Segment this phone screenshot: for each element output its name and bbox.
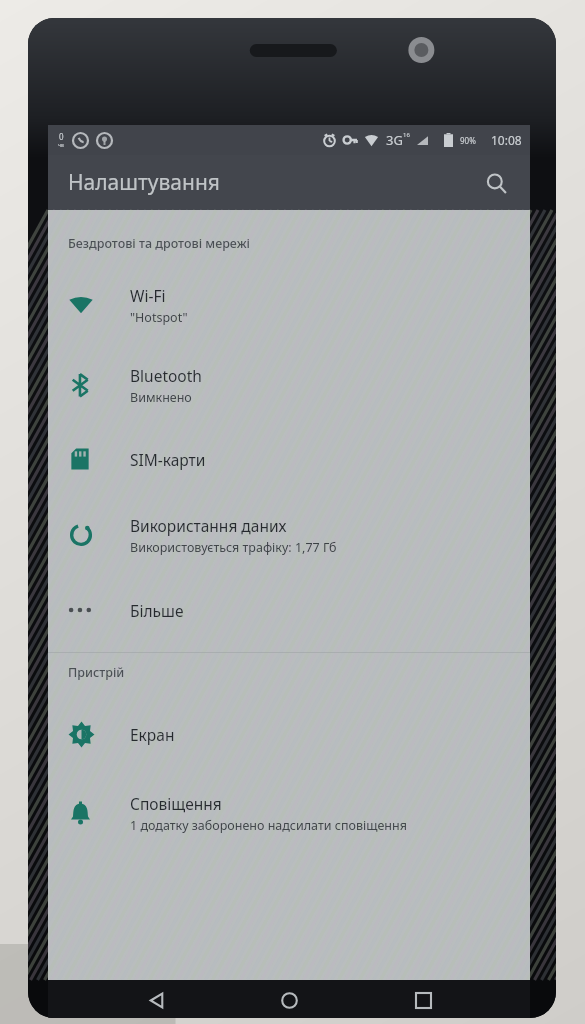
staticText: 3G — [386, 131, 403, 149]
button[interactable]: Екран — [48, 691, 530, 777]
staticText: 0 — [59, 131, 64, 142]
button[interactable]: Recent apps — [397, 980, 449, 1018]
staticText: 1 додатку заборонено надсилати сповіщенн… — [130, 817, 407, 834]
staticText: Екран — [130, 724, 175, 745]
staticText: Використання даних — [130, 515, 287, 536]
staticText: Бездротові та дротові мережі — [68, 235, 250, 252]
button[interactable]: Search — [474, 161, 518, 205]
button[interactable]: Home — [263, 980, 315, 1018]
staticText: Bluetooth — [130, 365, 202, 386]
staticText: 16 — [403, 131, 410, 139]
staticText: SIM-карти — [130, 449, 206, 470]
button[interactable]: SIM-карти — [48, 422, 530, 496]
staticText: Пристрій — [68, 664, 125, 681]
staticText: Використовується трафіку: 1,77 Гб — [130, 539, 337, 556]
button[interactable]: Сповіщення — [48, 777, 530, 849]
button[interactable]: Bluetooth — [48, 348, 530, 422]
staticText: чв — [58, 142, 64, 149]
staticText: Wi-Fi — [130, 285, 166, 306]
staticText: "Hotspot" — [130, 309, 188, 326]
staticText: Сповіщення — [130, 793, 222, 814]
button[interactable]: Back — [130, 980, 182, 1018]
button[interactable]: Використання даних — [48, 496, 530, 574]
staticText: 10:08 — [491, 132, 522, 148]
staticText: Налаштування — [68, 168, 220, 197]
staticText: Більше — [130, 600, 184, 621]
staticText: Вимкнено — [130, 389, 192, 406]
staticText: 90% — [460, 135, 476, 146]
button[interactable]: Wi-Fi — [48, 262, 530, 348]
button[interactable]: Більше — [48, 574, 530, 646]
